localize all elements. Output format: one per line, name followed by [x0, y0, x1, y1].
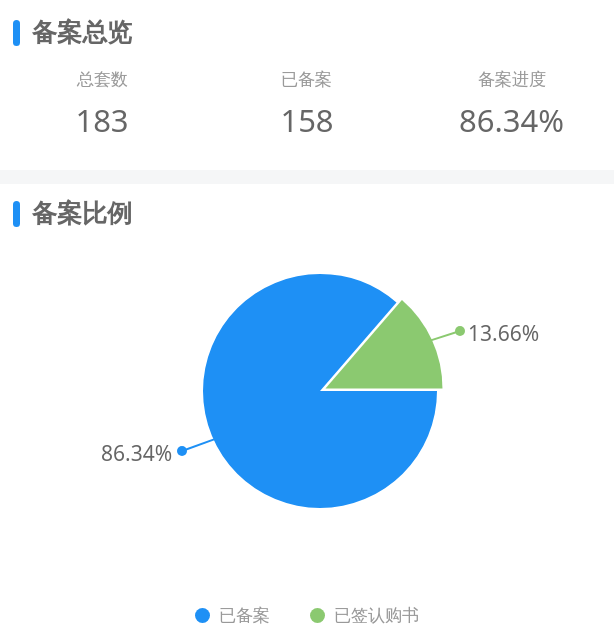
staticText: 备案比例 — [32, 198, 132, 229]
button[interactable]: 备案比例饼图 — [0, 229, 614, 605]
button[interactable]: 总套数 — [0, 69, 204, 141]
button[interactable]: 已备案 — [204, 69, 409, 141]
staticText: 158 — [280, 99, 334, 141]
staticText: 13.66% — [468, 319, 540, 348]
button[interactable]: 备案总览 — [0, 17, 614, 48]
staticText: 183 — [75, 99, 129, 141]
staticText: 已签认购书 — [334, 605, 419, 626]
button[interactable]: 备案进度 — [409, 69, 614, 141]
staticText: 已备案 — [219, 605, 270, 626]
staticText: 已备案 — [281, 69, 332, 90]
staticText: 备案进度 — [478, 69, 546, 90]
button[interactable]: 备案比例 — [0, 198, 614, 229]
staticText: 备案总览 — [32, 17, 132, 48]
staticText: 总套数 — [77, 69, 128, 90]
staticText: 86.34% — [101, 439, 173, 468]
button[interactable]: 已备案 — [195, 605, 270, 626]
button[interactable]: 已签认购书 — [310, 605, 419, 626]
staticText: 86.34% — [459, 99, 564, 141]
